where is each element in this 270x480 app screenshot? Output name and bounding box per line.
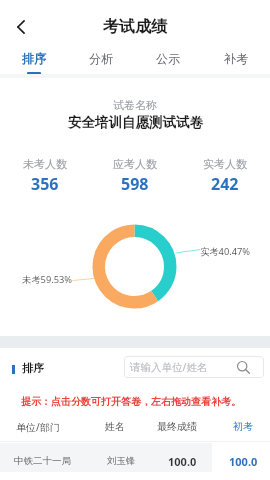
staticText: 公示 [156,51,180,66]
staticText: 考试成绩 [0,17,270,37]
staticText: 应考人数 [113,157,157,171]
staticText: 100.0 [168,454,197,469]
staticText: 未考59.53% [22,273,73,286]
staticText: 排序 [22,51,46,66]
staticText: 356 [31,173,59,195]
staticText: 提示：点击分数可打开答卷，左右拖动查看补考。 [21,395,241,408]
button[interactable]: 请输入单位/姓名 [124,356,264,378]
staticText: 刘玉锋 [107,455,136,467]
button[interactable]: 公示 [134,44,202,74]
button[interactable]: 排序 [12,361,44,375]
staticText: 排序 [22,361,44,375]
staticText: 姓名 [105,420,125,433]
button[interactable]: Back [6,12,36,42]
staticText: 中铁二十一局 [14,455,71,467]
button[interactable]: 分析 [67,44,134,74]
staticText: 100.0 [229,454,258,469]
staticText: 初考 [233,420,253,433]
staticText: 598 [121,173,149,195]
staticText: 单位/部门 [16,420,60,434]
staticText: 242 [211,173,239,195]
staticText: 分析 [89,51,113,66]
button[interactable]: 中铁二十一局 [0,443,270,472]
staticText: 实考40.47% [200,245,251,258]
staticText: 最终成绩 [157,420,197,433]
staticText: 补考 [224,51,248,66]
staticText: 安全培训自愿测试试卷 [68,114,203,131]
button[interactable]: 补考 [202,44,270,74]
button[interactable]: 排序 [0,44,67,74]
staticText: 请输入单位/姓名 [130,360,208,374]
staticText: 实考人数 [203,157,247,171]
staticText: 未考人数 [23,157,67,171]
staticText: 试卷名称 [113,98,157,112]
